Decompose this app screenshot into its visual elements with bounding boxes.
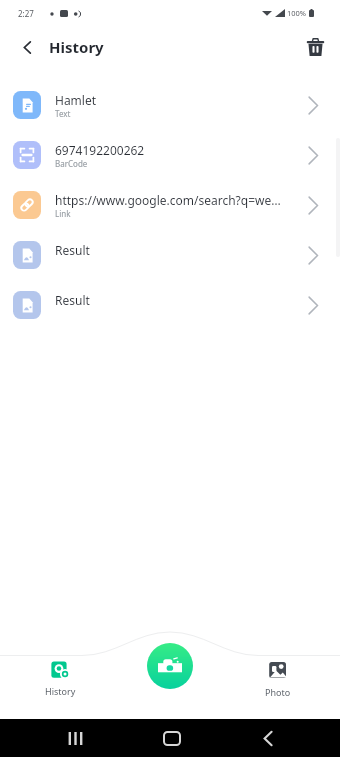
button[interactable]: Back (252, 723, 283, 754)
staticText: History (49, 37, 104, 57)
staticText: Result (55, 242, 90, 258)
button[interactable]: Home (156, 723, 187, 754)
button[interactable]: Delete all (296, 28, 334, 66)
button[interactable]: History (24, 626, 96, 697)
button[interactable]: Scan with camera (147, 643, 193, 689)
staticText: 2:27 (18, 8, 34, 19)
button[interactable]: Result (0, 230, 340, 280)
staticText: Text (55, 108, 71, 119)
button[interactable]: https://www.google.com/search?q=we… (0, 180, 340, 230)
button[interactable]: Recent apps (60, 723, 91, 754)
staticText: https://www.google.com/search?q=we… (55, 192, 281, 208)
button[interactable]: 6974192200262 (0, 130, 340, 180)
button[interactable]: Result (0, 280, 340, 330)
staticText: Hamlet (55, 92, 97, 108)
staticText: Link (55, 208, 71, 219)
staticText: Result (55, 292, 90, 308)
staticText: BarCode (55, 158, 88, 169)
staticText: 100% (287, 8, 307, 18)
staticText: History (45, 685, 76, 697)
button[interactable]: Hamlet (0, 80, 340, 130)
button[interactable]: Back (8, 28, 46, 66)
staticText: Photo (265, 686, 291, 698)
staticText: 6974192200262 (55, 142, 145, 158)
button[interactable]: Photo (242, 626, 314, 698)
